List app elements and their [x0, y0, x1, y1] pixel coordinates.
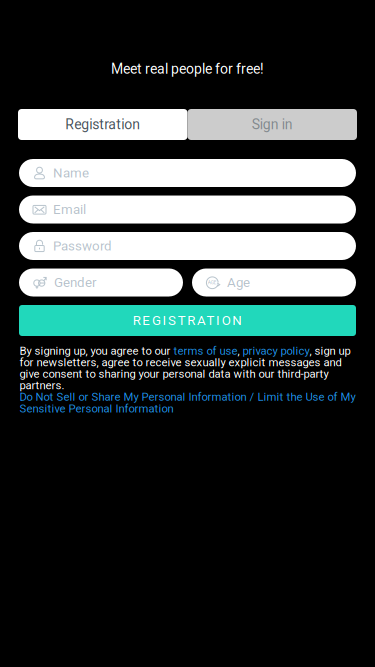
- staticText: AGE: [208, 280, 217, 285]
- button[interactable]: Name: [19, 159, 356, 187]
- staticText: Password: [53, 238, 112, 254]
- button[interactable]: REGISTRATION: [19, 305, 356, 336]
- staticText: Gender: [54, 275, 97, 290]
- button[interactable]: Gender: [19, 268, 183, 296]
- button[interactable]: Do Not Sell or Share My Personal Informa…: [19, 391, 355, 414]
- button[interactable]: Sign in: [187, 109, 357, 140]
- staticText: Meet real people for free!: [111, 61, 264, 77]
- button[interactable]: Password: [19, 232, 356, 260]
- staticText: REGISTRATION: [133, 313, 242, 328]
- staticText: Name: [53, 165, 89, 181]
- staticText: Email: [53, 202, 86, 217]
- staticText: Sign in: [252, 116, 293, 133]
- staticText: By signing up, you agree to our terms of…: [19, 345, 350, 391]
- staticText: Age: [227, 275, 250, 290]
- button[interactable]: Email: [19, 195, 356, 223]
- staticText: Do Not Sell or Share My Personal Informa…: [19, 391, 355, 414]
- button[interactable]: Registration: [18, 109, 187, 140]
- button[interactable]: AGE: [192, 268, 356, 296]
- staticText: Registration: [65, 116, 140, 133]
